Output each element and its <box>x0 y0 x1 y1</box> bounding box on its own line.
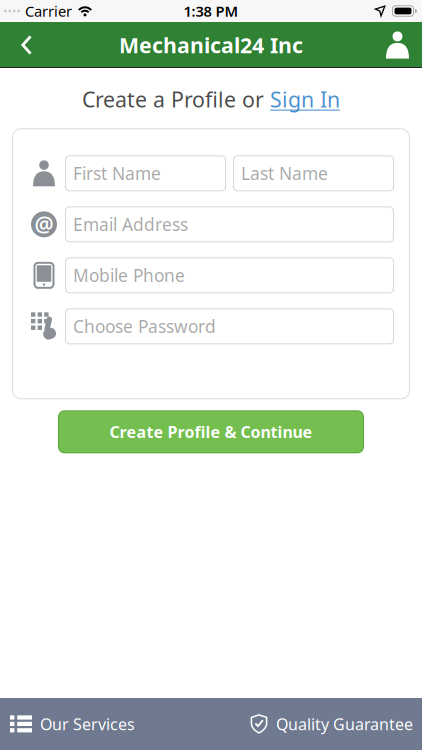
button[interactable]: First Name <box>65 155 226 191</box>
button[interactable]: Create Profile & Continue <box>58 410 364 453</box>
staticText: Choose Password <box>73 315 216 338</box>
staticText: Mobile Phone <box>73 264 185 287</box>
button[interactable]: Choose Password <box>65 308 394 344</box>
button[interactable]: Email Address <box>65 206 394 242</box>
staticText: Create a Profile or <box>82 85 270 113</box>
staticText: Carrier <box>25 1 72 21</box>
staticText: Quality Guarantee <box>276 713 413 735</box>
staticText: Sign In <box>270 85 340 113</box>
button[interactable]: Our Services <box>0 713 135 735</box>
staticText: Last Name <box>241 162 328 185</box>
button[interactable]: Account <box>386 22 422 67</box>
staticText: Our Services <box>40 713 135 735</box>
button[interactable]: Back <box>0 22 32 68</box>
button[interactable]: Quality Guarantee <box>250 713 422 735</box>
button[interactable]: Mobile Phone <box>65 257 394 293</box>
staticText: @ <box>34 210 53 238</box>
button[interactable]: Sign In <box>270 85 340 113</box>
staticText: Email Address <box>73 213 188 236</box>
staticText: Mechanical24 Inc <box>119 31 303 59</box>
staticText: Create Profile & Continue <box>109 421 312 442</box>
staticText: First Name <box>73 162 161 185</box>
staticText: 1:38 PM <box>183 1 238 21</box>
button[interactable]: Last Name <box>233 155 394 191</box>
